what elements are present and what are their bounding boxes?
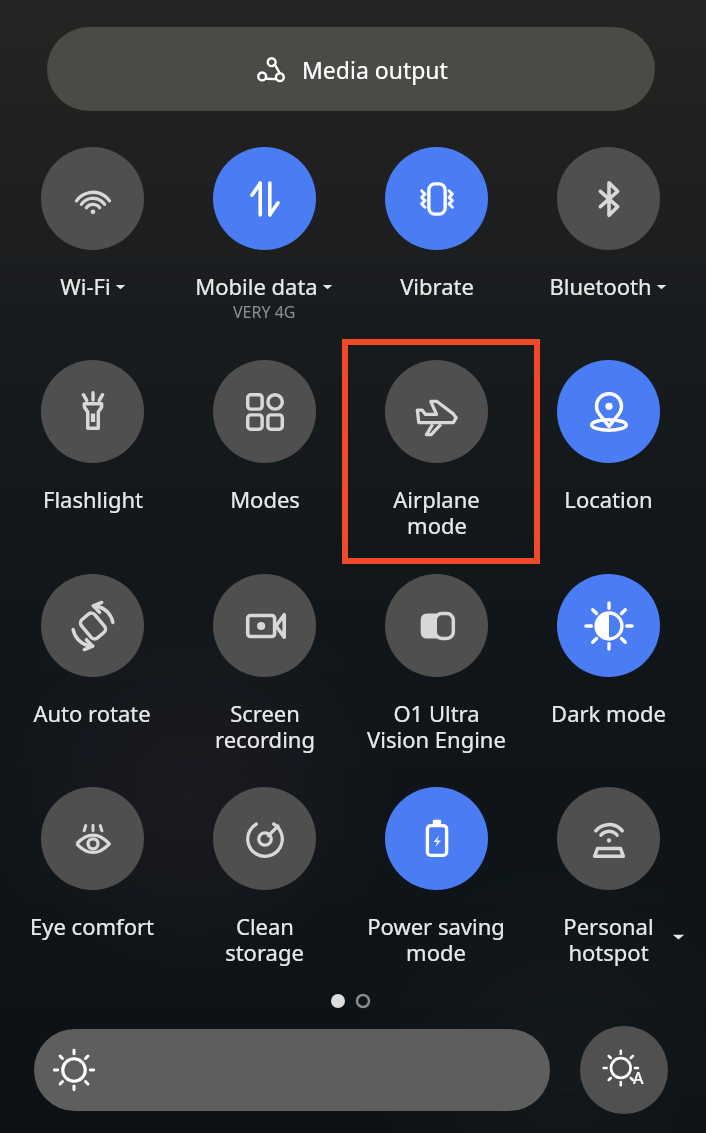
staticText: storage (225, 937, 304, 967)
staticText: Auto rotate (33, 698, 151, 728)
button[interactable]: Location (522, 360, 694, 550)
button[interactable]: Screen (178, 574, 350, 764)
button[interactable]: Flashlight (6, 360, 178, 550)
staticText: Media output (302, 54, 448, 85)
button[interactable]: Bluetooth (522, 147, 694, 337)
button[interactable]: Auto brightness (580, 1026, 668, 1114)
button[interactable]: Vibrate (350, 147, 522, 337)
staticText: Vibrate (400, 271, 474, 301)
staticText: A (633, 1067, 644, 1089)
staticText: Modes (230, 484, 300, 514)
staticText: Airplane (393, 484, 480, 514)
button[interactable]: Power saving (350, 787, 522, 977)
button[interactable]: Dark mode (522, 574, 694, 764)
staticText: Clean (236, 911, 294, 941)
staticText: VERY 4G (233, 301, 296, 323)
staticText: Screen (230, 698, 300, 728)
staticText: mode (407, 510, 467, 540)
button[interactable]: O1 Ultra (350, 574, 522, 764)
button[interactable]: Auto rotate (6, 574, 178, 764)
staticText: Location (564, 484, 653, 514)
button[interactable]: Wi-Fi (6, 147, 178, 337)
button[interactable]: Mobile data (178, 147, 350, 337)
button[interactable]: Clean (178, 787, 350, 977)
staticText: Wi-Fi (60, 271, 111, 301)
button[interactable]: Page indicator (331, 994, 375, 1008)
staticText: Bluetooth (549, 271, 652, 301)
button[interactable]: Eye comfort (6, 787, 178, 977)
staticText: Power saving (367, 911, 505, 941)
staticText: hotspot (568, 937, 649, 967)
staticText: Personal (563, 911, 654, 941)
staticText: Flashlight (43, 484, 143, 514)
button[interactable]: Modes (178, 360, 350, 550)
staticText: recording (215, 724, 315, 754)
staticText: Eye comfort (30, 911, 154, 941)
staticText: Dark mode (551, 698, 666, 728)
button[interactable]: Brightness (34, 1029, 550, 1111)
staticText: mode (406, 937, 466, 967)
staticText: Mobile data (195, 271, 318, 301)
staticText: Vision Engine (367, 724, 506, 754)
button[interactable]: Personal (522, 787, 694, 977)
button[interactable]: Airplane (350, 360, 522, 550)
staticText: O1 Ultra (393, 698, 480, 728)
button[interactable]: Media output (47, 27, 655, 111)
